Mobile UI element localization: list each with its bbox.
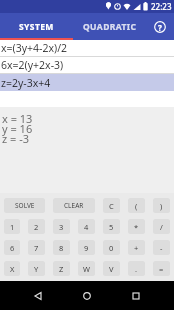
button[interactable]: 6x=2(y+2x-3) (0, 57, 174, 73)
staticText: Y (34, 264, 39, 274)
staticText: / (160, 222, 163, 232)
button[interactable]: * (128, 219, 145, 234)
button[interactable]: SOLVE (4, 198, 45, 213)
staticText: 8 (59, 243, 64, 253)
button[interactable]: V (103, 261, 120, 276)
button[interactable] (82, 291, 92, 301)
button[interactable]: ) (153, 198, 170, 213)
button[interactable]: 3 (53, 219, 70, 234)
staticText: 9 (84, 243, 89, 253)
button[interactable] (33, 291, 43, 301)
staticText: 6x=2(y+2x-3) (1, 58, 64, 72)
button[interactable]: ? (146, 13, 174, 40)
staticText: 5 (109, 222, 114, 232)
button[interactable] (131, 291, 141, 301)
staticText: + (134, 243, 139, 253)
staticText: 6 (10, 243, 15, 253)
staticText: - (160, 243, 163, 253)
button[interactable]: 8 (53, 240, 70, 255)
button[interactable]: + (128, 240, 145, 255)
staticText: 1 (10, 222, 15, 232)
button[interactable]: 7 (28, 240, 45, 255)
button[interactable]: x=(3y+4-2x)/2 (0, 40, 174, 56)
staticText: ) (160, 201, 163, 211)
staticText: 22:23 (151, 1, 172, 12)
staticText: Z (59, 264, 64, 274)
staticText: X (10, 264, 15, 274)
button[interactable]: Y (28, 261, 45, 276)
staticText: . (135, 264, 138, 274)
staticText: ? (158, 22, 162, 33)
staticText: V (109, 264, 114, 274)
staticText: * (134, 222, 139, 232)
staticText: ( (135, 201, 138, 211)
button[interactable]: 9 (78, 240, 95, 255)
button[interactable]: SYSTEM (0, 13, 73, 40)
button[interactable]: X (4, 261, 20, 276)
button[interactable]: 2 (28, 219, 45, 234)
staticText: SYSTEM (19, 21, 54, 33)
button[interactable]: QUADRATIC (73, 13, 146, 40)
staticText: x=(3y+4-2x)/2 (1, 41, 68, 55)
button[interactable]: 0 (103, 240, 120, 255)
button[interactable]: C (103, 198, 120, 213)
staticText: W (83, 264, 90, 274)
button[interactable]: 6 (4, 240, 20, 255)
button[interactable]: - (153, 240, 170, 255)
staticText: CLEAR (64, 201, 84, 210)
button[interactable]: . (128, 261, 145, 276)
button[interactable]: ( (128, 198, 145, 213)
button[interactable]: 1 (4, 219, 20, 234)
staticText: 2 (34, 222, 39, 232)
button[interactable]: / (153, 219, 170, 234)
button[interactable]: = (153, 261, 170, 276)
button[interactable]: 4 (78, 219, 95, 234)
staticText: 7 (34, 243, 39, 253)
staticText: 3 (59, 222, 64, 232)
staticText: = (159, 264, 164, 274)
button[interactable]: W (78, 261, 95, 276)
staticText: QUADRATIC (83, 21, 137, 33)
button[interactable]: Z (53, 261, 70, 276)
staticText: C (109, 201, 114, 211)
staticText: 0 (109, 243, 114, 253)
staticText: x = 13 y = 16 z = -3 (2, 111, 33, 146)
button[interactable]: z=2y-3x+4 (0, 74, 174, 91)
button[interactable]: 5 (103, 219, 120, 234)
button[interactable]: CLEAR (53, 198, 95, 213)
staticText: SOLVE (15, 201, 35, 210)
staticText: 4 (84, 222, 89, 232)
staticText: z=2y-3x+4 (1, 76, 51, 90)
